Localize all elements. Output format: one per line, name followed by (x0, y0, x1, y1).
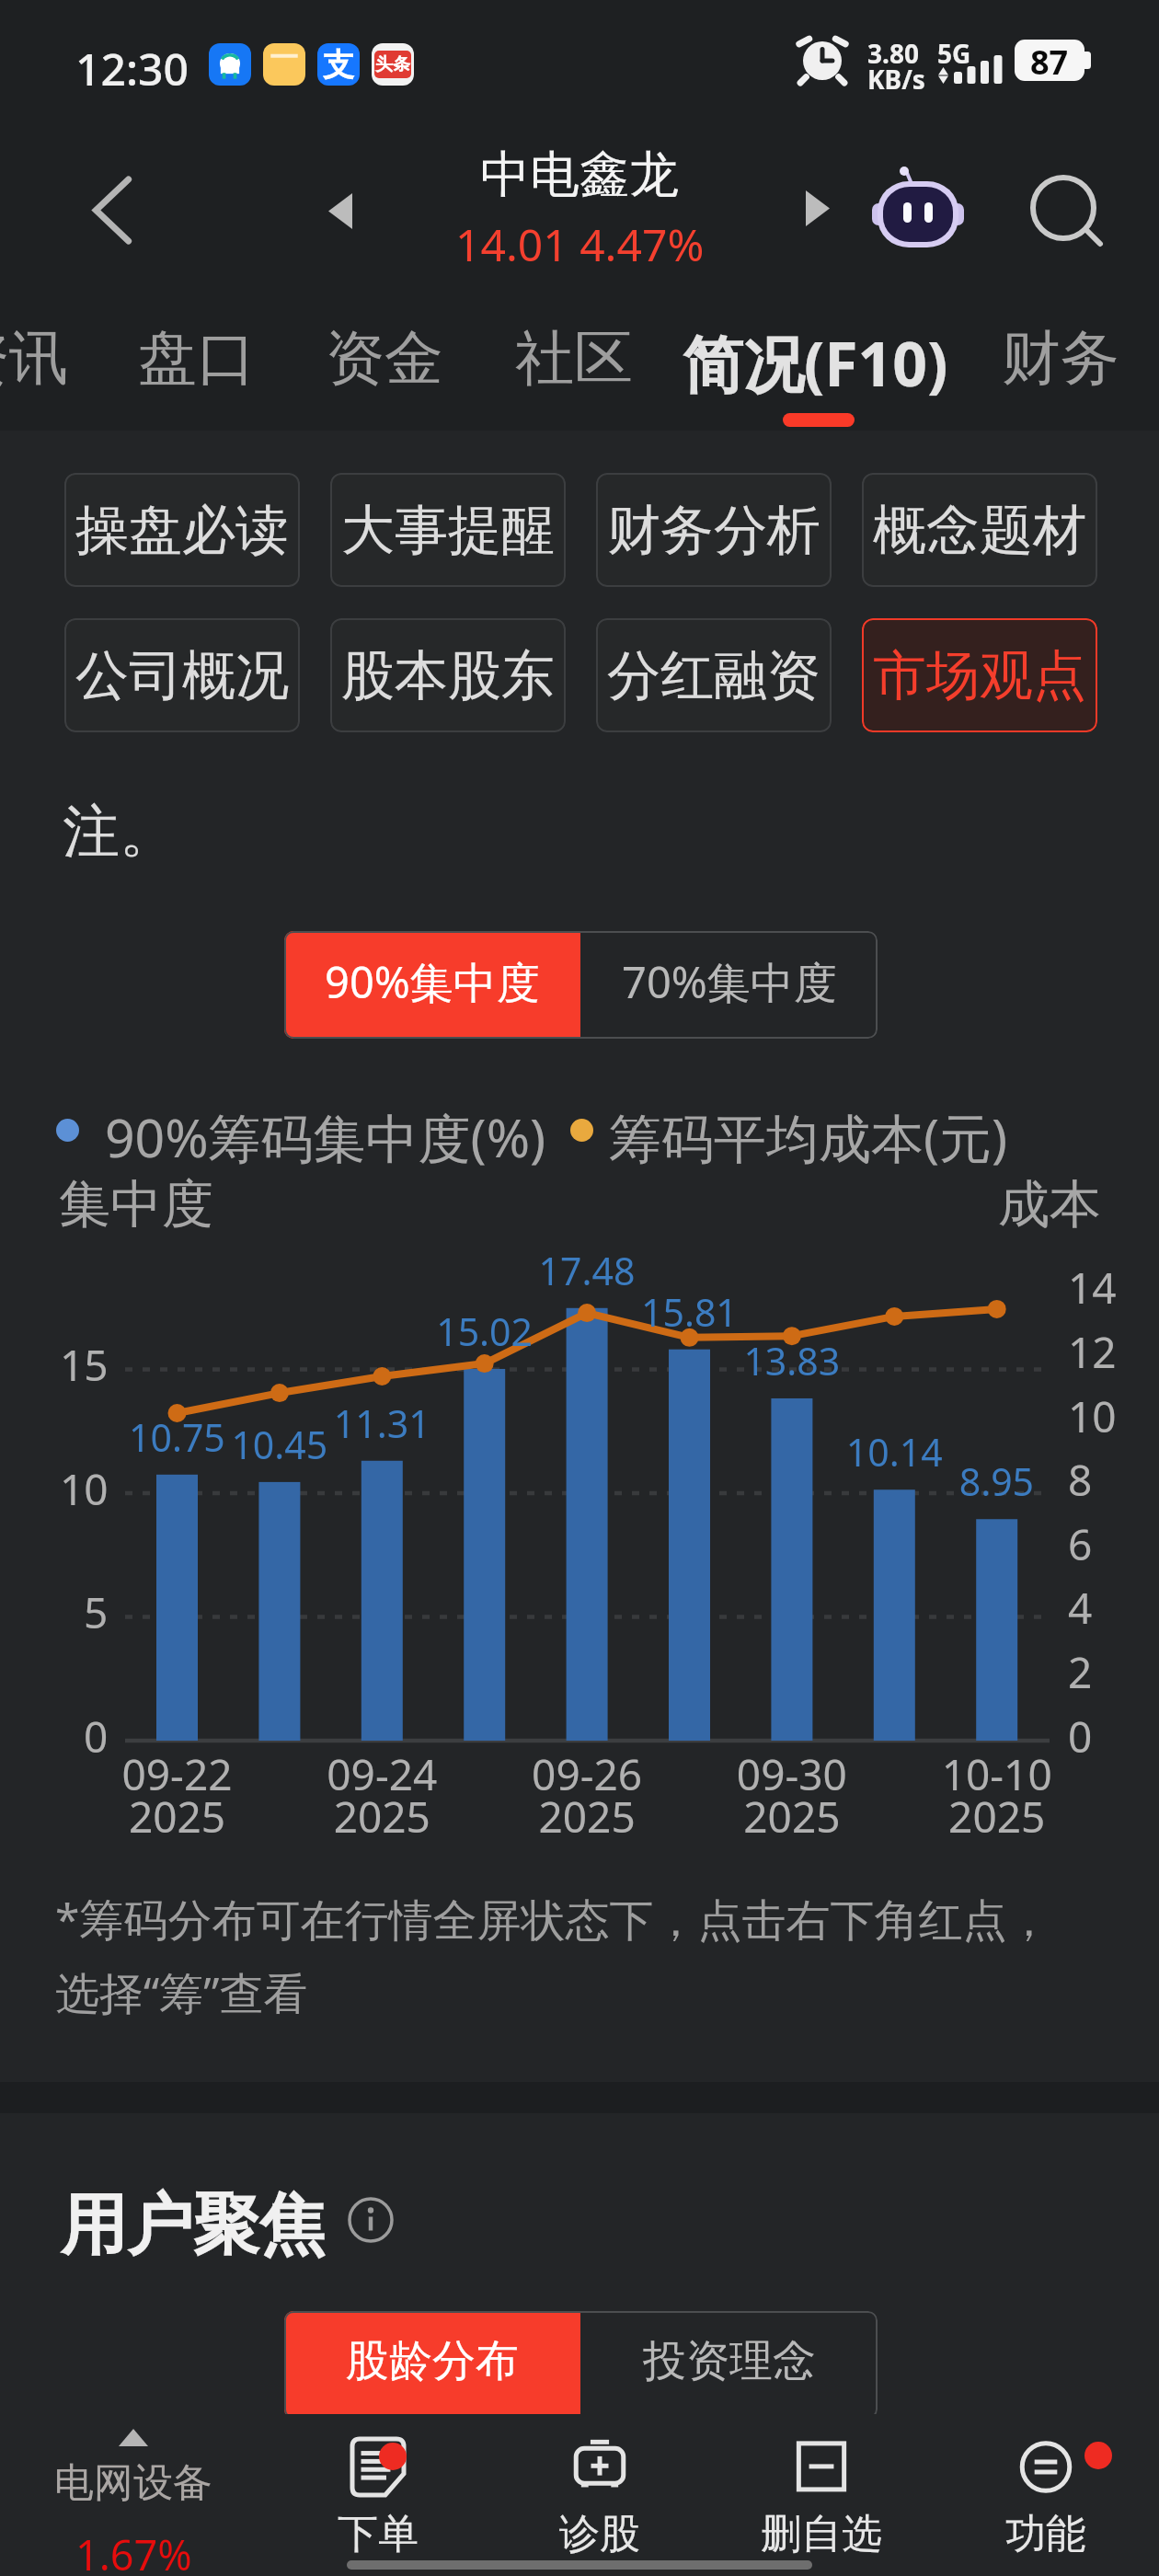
button[interactable]: 社区 (487, 294, 661, 431)
staticText: 诊股 (559, 2509, 640, 2559)
staticText: 头条 (375, 53, 410, 75)
staticText: 中电鑫龙 (480, 144, 679, 206)
staticText: 筹码平均成本(元) (609, 1101, 1008, 1173)
staticText: 股龄分布 (346, 2334, 519, 2388)
staticText: 用户聚焦 (61, 2184, 326, 2268)
button[interactable]: 分红融资 (596, 618, 832, 732)
staticText: 电网设备 (54, 2458, 212, 2508)
staticText: 1.67% (75, 2526, 192, 2576)
button[interactable]: 下单 (277, 2414, 479, 2570)
staticText: 集中度 (59, 1172, 213, 1237)
button[interactable]: 股本股东 (330, 618, 566, 732)
staticText: KB/s (867, 62, 925, 97)
button[interactable]: AI assistant (863, 155, 973, 265)
staticText: 87 (1030, 40, 1069, 81)
button[interactable]: 70%集中度 (580, 931, 878, 1039)
staticText: 股本股东 (341, 642, 555, 709)
button[interactable]: 功能 (945, 2414, 1147, 2570)
staticText: 投资理念 (643, 2334, 816, 2388)
button[interactable]: 投资理念 (580, 2311, 878, 2419)
staticText: 市场观点 (873, 642, 1086, 709)
staticText: 成本 (998, 1172, 1101, 1237)
button[interactable]: 电网设备 (28, 2414, 239, 2576)
button[interactable]: 操盘必读 (64, 473, 300, 587)
button[interactable]: 资金 (297, 294, 472, 431)
button[interactable]: 诊股 (499, 2414, 701, 2570)
staticText: 盘口 (138, 321, 256, 396)
staticText: 操盘必读 (75, 497, 289, 564)
staticText: 分红融资 (607, 642, 820, 709)
staticText: 删自选 (761, 2509, 882, 2559)
staticText: 公司概况 (75, 642, 289, 709)
staticText: 12:30 (75, 39, 189, 98)
button[interactable]: 股龄分布 (284, 2311, 580, 2419)
button[interactable]: Previous stock (294, 165, 386, 257)
staticText: 3.80 (867, 36, 919, 71)
button[interactable]: 财务分析 (596, 473, 832, 587)
staticText: 5G (937, 36, 971, 71)
button[interactable]: 大事提醒 (330, 473, 566, 587)
button[interactable]: 财务 (973, 294, 1148, 431)
staticText: 支 (323, 45, 354, 85)
staticText: 90%筹码集中度(%) (105, 1101, 546, 1173)
staticText: *筹码分布可在行情全屏状态下，点击右下角红点， 选择“筹”查看 (55, 1889, 1051, 2022)
button[interactable]: 公司概况 (64, 618, 300, 732)
staticText: 资讯 (0, 321, 68, 396)
button[interactable]: 概念题材 (862, 473, 1097, 587)
button[interactable]: 市场观点 (862, 618, 1097, 732)
staticText: 财务 (1002, 321, 1119, 396)
staticText: 70%集中度 (622, 952, 837, 1011)
staticText: 简况(F10) (683, 321, 948, 404)
staticText: 大事提醒 (341, 497, 555, 564)
staticText: 功能 (1005, 2509, 1086, 2559)
button[interactable]: Back (57, 155, 167, 265)
button[interactable]: 资讯 (0, 294, 97, 431)
staticText: 概念题材 (873, 497, 1086, 564)
staticText: 注。 (63, 796, 177, 868)
button[interactable]: 盘口 (109, 294, 284, 431)
staticText: 14.01 4.47% (455, 214, 705, 274)
button[interactable]: Next stock (772, 162, 864, 254)
button[interactable]: Search (1013, 157, 1123, 268)
staticText: 社区 (515, 321, 633, 396)
button[interactable]: 90%集中度 (284, 931, 580, 1039)
button[interactable]: 简况(F10) (663, 294, 967, 431)
staticText: 下单 (338, 2509, 419, 2559)
staticText: 90%集中度 (325, 952, 540, 1011)
button[interactable]: 删自选 (720, 2414, 923, 2570)
staticText: 资金 (326, 321, 443, 396)
staticText: 财务分析 (607, 497, 820, 564)
